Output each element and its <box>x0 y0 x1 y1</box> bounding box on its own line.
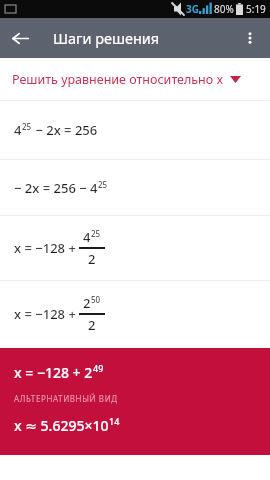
staticText: 25 <box>91 228 101 239</box>
staticText: 50 <box>91 294 101 305</box>
staticText: 80% <box>214 2 234 16</box>
staticText: − 2x = 256 <box>32 121 98 139</box>
staticText: − 2x = 256 − 4 <box>14 179 98 197</box>
staticText: 14 <box>109 415 120 427</box>
staticText: Решить уравнение относительно x <box>12 71 224 88</box>
staticText: АЛЬТЕРНАТИВНЫЙ ВИД <box>14 393 118 404</box>
button[interactable]: − 2x = 256 − 4 <box>0 160 270 215</box>
button[interactable]: More options <box>230 18 270 58</box>
staticText: x = −128 + <box>14 305 76 323</box>
staticText: 2 <box>88 250 96 268</box>
staticText: 3G <box>186 2 199 16</box>
staticText: 2 <box>83 294 91 312</box>
staticText: 5:19 <box>246 2 266 16</box>
staticText: 4 <box>83 228 91 246</box>
staticText: 49 <box>93 362 104 374</box>
button[interactable]: Back <box>0 18 40 58</box>
staticText: x = −128 + <box>14 239 76 257</box>
staticText: x ≈ 5.6295×10 <box>14 416 109 435</box>
button[interactable]: Решить уравнение относительно x <box>0 58 270 100</box>
staticText: x = −128 + 2 <box>14 363 93 382</box>
button[interactable]: x = −128 + <box>0 216 270 280</box>
button[interactable]: 4 <box>0 101 270 159</box>
staticText: 25 <box>22 121 32 132</box>
staticText: Шаги решения <box>53 28 160 48</box>
button[interactable]: x = −128 + <box>0 281 270 347</box>
staticText: 4 <box>14 121 22 139</box>
staticText: 2 <box>88 316 96 334</box>
staticText: 25 <box>98 179 108 190</box>
button[interactable]: x = −128 + 2 <box>0 348 270 455</box>
